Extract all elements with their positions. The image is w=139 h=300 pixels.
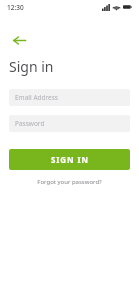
button[interactable]: Password xyxy=(9,115,130,132)
staticText: Sign in xyxy=(9,57,54,76)
staticText: Forgot your password? xyxy=(37,178,102,186)
button[interactable]: Forgot your password? xyxy=(0,178,139,186)
staticText: Password xyxy=(15,119,45,128)
staticText: Email Address xyxy=(15,93,58,102)
button[interactable]: Back xyxy=(5,26,33,54)
staticText: 12:30 xyxy=(7,3,24,12)
staticText: SIGN IN xyxy=(51,154,89,165)
button[interactable]: SIGN IN xyxy=(9,149,130,170)
button[interactable]: Email Address xyxy=(9,89,130,106)
